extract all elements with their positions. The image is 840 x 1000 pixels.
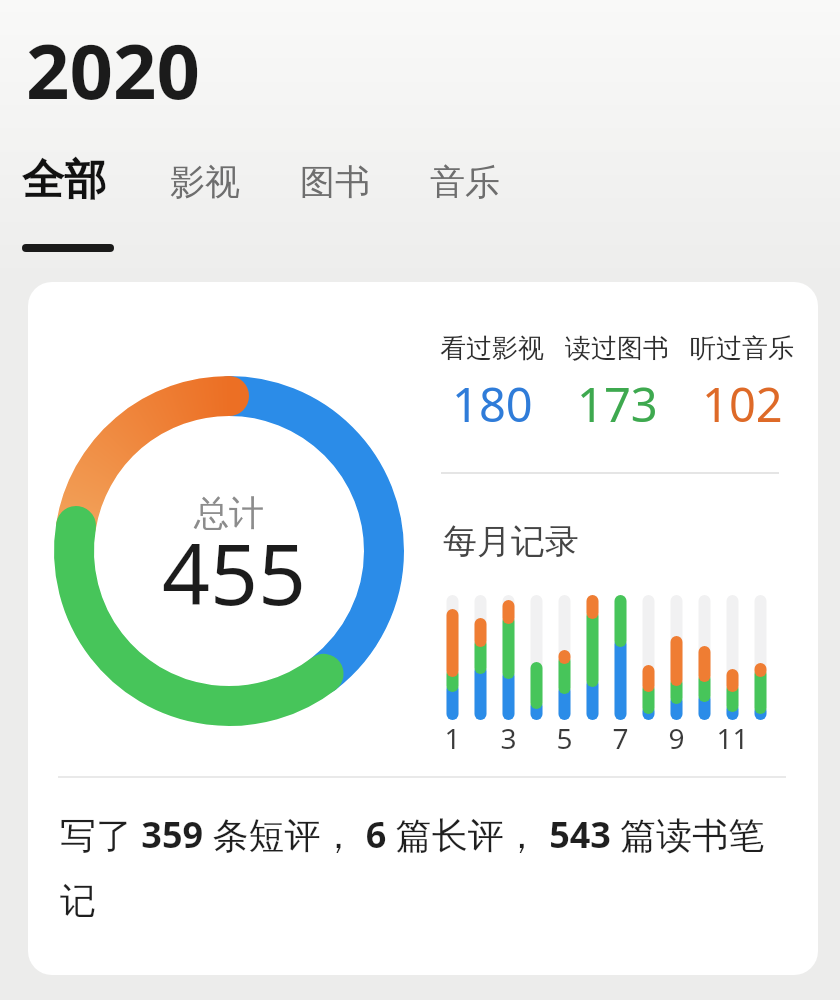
staticText: 全部 [22,154,106,207]
staticText: 3 [500,719,517,757]
button[interactable]: 影视 [158,152,228,196]
staticText: 5 [556,719,573,757]
staticText: 11 [716,719,749,757]
staticText: 总计 [194,491,264,535]
button[interactable]: 音乐 [418,152,488,196]
staticText: 每月记录 [443,520,579,563]
staticText: 影视 [170,160,240,204]
staticText: 180 [452,372,533,436]
staticText: 读过图书 [565,332,669,365]
staticText: 图书 [300,160,370,204]
staticText: 写了 359 条短评， 6 篇长评， 543 篇读书笔记 [60,810,800,923]
staticText: 2020 [26,18,200,122]
staticText: 455 [162,515,307,629]
staticText: 看过影视 [440,332,544,365]
staticText: 9 [668,719,685,757]
staticText: 102 [702,372,783,436]
button[interactable]: 图书 [288,152,358,196]
staticText: 7 [612,719,629,757]
staticText: 音乐 [430,160,500,204]
staticText: 1 [444,719,461,757]
button[interactable]: 全部 [10,146,94,199]
staticText: 173 [577,372,658,436]
staticText: 听过音乐 [690,332,794,365]
